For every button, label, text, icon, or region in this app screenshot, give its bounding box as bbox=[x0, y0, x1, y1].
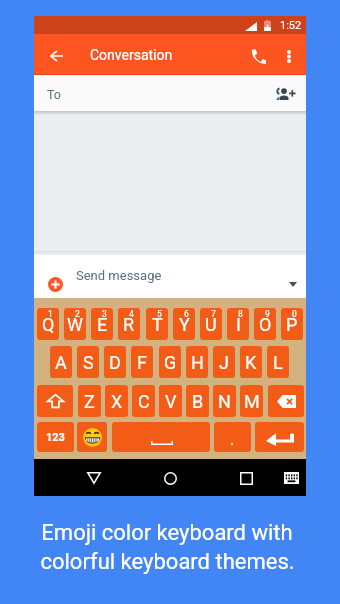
button[interactable]: J bbox=[213, 346, 235, 378]
staticText: 8 bbox=[238, 309, 243, 319]
button[interactable]: Expand bbox=[281, 272, 305, 296]
button[interactable]: N bbox=[213, 385, 236, 417]
button[interactable]: 123 bbox=[37, 422, 74, 452]
staticText: L bbox=[273, 352, 283, 373]
staticText: U bbox=[205, 314, 217, 335]
button[interactable]: S bbox=[77, 346, 99, 378]
button[interactable]: B bbox=[186, 385, 209, 417]
button[interactable]: Navigate up bbox=[42, 42, 70, 70]
button[interactable]: H bbox=[186, 346, 208, 378]
staticText: 5 bbox=[157, 309, 162, 319]
button[interactable]: K bbox=[240, 346, 262, 378]
staticText: 0 bbox=[292, 309, 297, 319]
staticText: 123 bbox=[46, 431, 65, 444]
button[interactable]: Q bbox=[37, 308, 59, 340]
staticText: 3 bbox=[102, 309, 107, 319]
staticText: M bbox=[244, 391, 260, 412]
button[interactable]: U bbox=[200, 308, 222, 340]
staticText: colorful keyboard themes. bbox=[40, 549, 295, 575]
staticText: X bbox=[111, 391, 123, 412]
staticText: I bbox=[236, 314, 241, 335]
staticText: D bbox=[109, 352, 121, 373]
staticText: B bbox=[192, 391, 204, 412]
staticText: O bbox=[259, 314, 272, 335]
button[interactable]: D bbox=[104, 346, 126, 378]
button[interactable]: Emoji bbox=[77, 422, 107, 452]
button[interactable]: Home bbox=[156, 464, 184, 492]
button[interactable]: R bbox=[118, 308, 140, 340]
staticText: F bbox=[137, 352, 147, 373]
button[interactable]: Add people bbox=[268, 80, 302, 108]
staticText: H bbox=[191, 352, 204, 373]
staticText: K bbox=[245, 352, 257, 373]
button[interactable]: X bbox=[105, 385, 128, 417]
staticText: 9 bbox=[265, 309, 270, 319]
button[interactable]: I bbox=[227, 308, 249, 340]
staticText: G bbox=[164, 352, 177, 373]
button[interactable]: T bbox=[146, 308, 168, 340]
button[interactable]: C bbox=[132, 385, 155, 417]
button[interactable]: Space bbox=[112, 422, 210, 452]
button[interactable]: Backspace bbox=[268, 385, 304, 417]
button[interactable]: Y bbox=[173, 308, 195, 340]
staticText: J bbox=[219, 352, 229, 373]
staticText: To bbox=[47, 87, 61, 102]
button[interactable]: W bbox=[64, 308, 86, 340]
button[interactable]: F bbox=[131, 346, 153, 378]
button[interactable]: L bbox=[267, 346, 289, 378]
staticText: W bbox=[67, 314, 83, 335]
staticText: 7 bbox=[211, 309, 216, 319]
staticText: N bbox=[218, 391, 231, 412]
staticText: 1 bbox=[48, 309, 53, 319]
button[interactable]: Call bbox=[244, 42, 272, 70]
button[interactable]: Add attachment bbox=[43, 272, 67, 296]
button[interactable]: Enter bbox=[255, 422, 304, 452]
staticText: 1:52 bbox=[280, 19, 302, 32]
staticText: A bbox=[55, 352, 67, 373]
button[interactable]: Z bbox=[78, 385, 101, 417]
staticText: P bbox=[286, 314, 298, 335]
staticText: 6 bbox=[184, 309, 189, 319]
button[interactable]: V bbox=[159, 385, 182, 417]
button[interactable]: Back bbox=[80, 464, 108, 492]
button[interactable]: O bbox=[254, 308, 276, 340]
staticText: C bbox=[138, 391, 150, 412]
staticText: S bbox=[83, 352, 94, 373]
button[interactable]: G bbox=[159, 346, 181, 378]
button[interactable]: Change keyboard bbox=[277, 464, 305, 492]
button[interactable]: E bbox=[91, 308, 113, 340]
staticText: Send message bbox=[76, 268, 162, 283]
staticText: R bbox=[123, 314, 135, 335]
button[interactable]: Recent apps bbox=[232, 464, 260, 492]
button[interactable]: Shift bbox=[37, 385, 73, 417]
button[interactable]: P bbox=[281, 308, 303, 340]
staticText: Z bbox=[84, 391, 95, 412]
staticText: Conversation bbox=[90, 47, 173, 63]
staticText: Emoji color keyboard with bbox=[41, 520, 293, 546]
button[interactable]: M bbox=[240, 385, 263, 417]
staticText: 2 bbox=[75, 309, 80, 319]
staticText: V bbox=[165, 391, 177, 412]
staticText: Q bbox=[42, 314, 55, 335]
button[interactable]: A bbox=[50, 346, 72, 378]
staticText: 4 bbox=[129, 309, 134, 319]
staticText: T bbox=[152, 314, 163, 335]
button[interactable] bbox=[214, 422, 251, 452]
button[interactable]: More options bbox=[277, 44, 301, 68]
staticText: Y bbox=[179, 314, 190, 335]
staticText: E bbox=[97, 314, 108, 335]
